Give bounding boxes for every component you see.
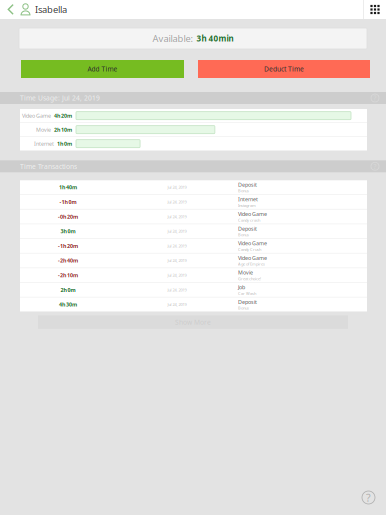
staticText: Video Game <box>238 240 267 247</box>
staticText: -1h 0m <box>59 198 76 205</box>
staticText: Video Game <box>238 254 267 261</box>
staticText: Time Usage: Jul 24, 2019 <box>20 94 100 102</box>
staticText: Deposit <box>238 225 257 232</box>
staticText: 1h 0m <box>57 140 72 147</box>
button[interactable]: Help <box>362 491 386 515</box>
staticText: Available: <box>152 32 193 45</box>
staticText: Bonus <box>238 232 249 237</box>
staticText: Car Wash <box>238 291 256 296</box>
staticText: Jul 24, 2019 <box>167 272 186 278</box>
staticText: -0h 20m <box>58 213 78 220</box>
staticText: Candy crash <box>238 217 260 223</box>
staticText: Movie <box>36 126 51 133</box>
staticText: Bonus <box>238 305 249 311</box>
staticText: Jul 24, 2019 <box>167 214 186 219</box>
staticText: Candy Crush <box>238 247 261 252</box>
staticText: Jul 24, 2019 <box>167 287 186 292</box>
button[interactable]: Deduct Time <box>198 60 370 78</box>
staticText: Jul 24, 2019 <box>167 243 186 248</box>
button[interactable]: Back <box>0 0 20 19</box>
staticText: Bonus <box>238 188 249 193</box>
staticText: Great choice! <box>238 276 261 281</box>
staticText: 4h 30m <box>59 301 77 308</box>
staticText: 3h 0m <box>60 228 75 235</box>
staticText: Age of Empires <box>238 261 265 267</box>
staticText: 1h 40m <box>59 184 77 191</box>
button[interactable]: Add Time <box>21 60 184 78</box>
staticText: 3h 40min <box>196 33 233 44</box>
staticText: Add Time <box>87 65 117 73</box>
staticText: Video Game <box>238 210 267 217</box>
staticText: -2h 10m <box>58 272 78 279</box>
staticText: -2h 40m <box>58 257 78 264</box>
staticText: Movie <box>238 269 253 276</box>
staticText: Jul 24, 2019 <box>167 229 186 234</box>
staticText: Job <box>238 284 245 291</box>
staticText: -1h 20m <box>58 242 78 249</box>
staticText: ? <box>366 490 371 505</box>
staticText: Deposit <box>238 181 257 188</box>
staticText: Time Transactions <box>20 162 77 171</box>
staticText: Deduct Time <box>264 65 304 73</box>
staticText: Deposit <box>238 298 257 305</box>
staticText: Jul 24, 2019 <box>167 258 186 263</box>
staticText: Internet <box>238 196 258 203</box>
staticText: 2h 10m <box>54 126 72 133</box>
staticText: Instagram <box>238 203 256 208</box>
staticText: 4h 20m <box>54 112 72 119</box>
staticText: Isabella <box>35 3 67 16</box>
staticText: Internet <box>34 140 54 147</box>
staticText: Jul 24, 2019 <box>167 185 186 190</box>
staticText: Jul 24, 2019 <box>167 199 186 205</box>
staticText: 2h 0m <box>60 286 75 293</box>
staticText: Jul 24, 2019 <box>167 302 186 307</box>
staticText: Show More <box>175 318 211 327</box>
staticText: Video Game <box>22 112 51 119</box>
button[interactable]: Menu <box>364 0 386 19</box>
